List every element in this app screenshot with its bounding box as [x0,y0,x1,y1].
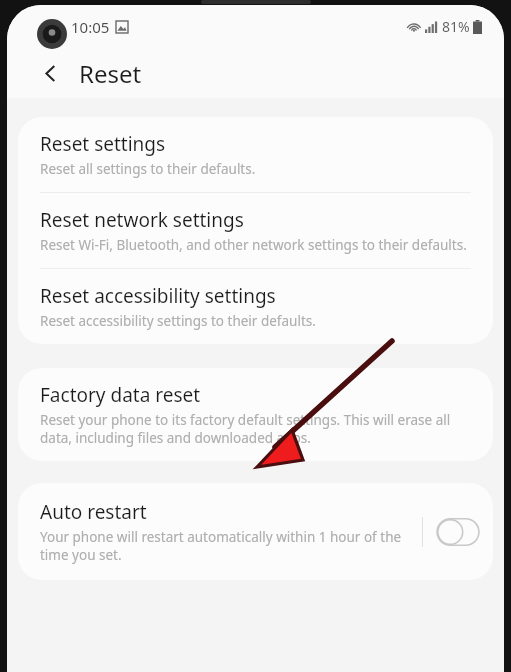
button[interactable]: Auto restart [18,483,493,580]
button[interactable]: Auto restart toggle [436,517,480,547]
staticText: Reset accessibility settings [40,283,276,309]
button[interactable]: Factory data reset [18,368,493,461]
staticText: Reset Wi-Fi, Bluetooth, and other networ… [40,236,467,254]
staticText: Auto restart [40,499,147,525]
staticText: Reset [79,57,142,90]
staticText: Reset accessibility settings to their de… [40,312,316,330]
button[interactable]: Back [35,58,65,88]
button[interactable]: Reset settings [18,117,493,192]
staticText: Reset settings [40,131,166,157]
staticText: 81% [442,17,470,36]
staticText: Factory data reset [40,382,201,408]
button[interactable]: Reset network settings [18,193,493,268]
staticText: Your phone will restart automatically wi… [40,528,414,564]
staticText: Reset network settings [40,207,244,233]
staticText: 10:05 [71,17,110,37]
staticText: Reset all settings to their defaults. [40,160,256,178]
button[interactable]: Reset accessibility settings [18,269,493,344]
staticText: Reset your phone to its factory default … [40,411,471,447]
